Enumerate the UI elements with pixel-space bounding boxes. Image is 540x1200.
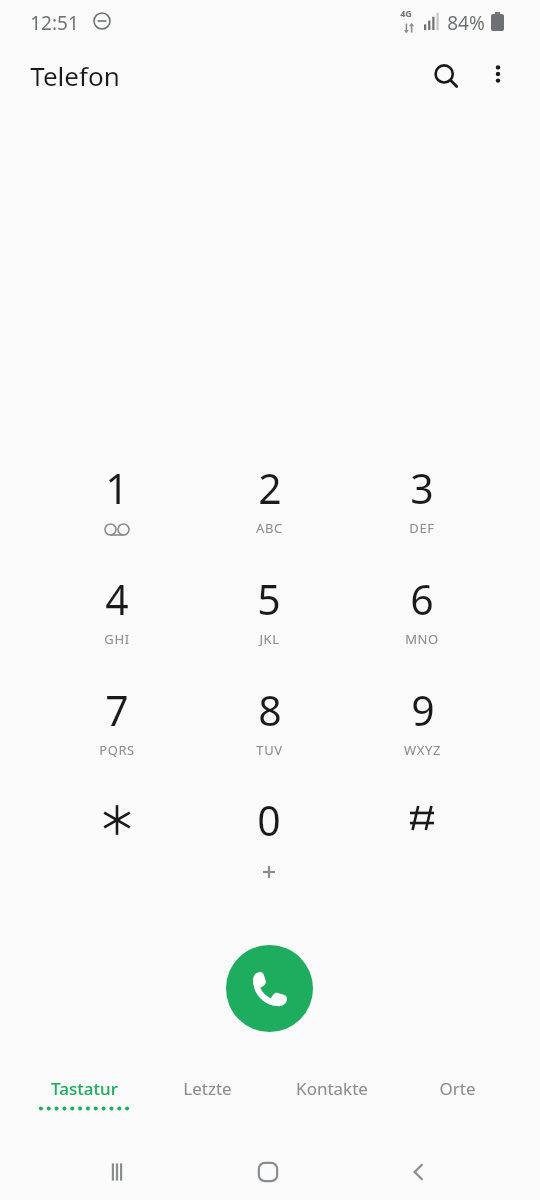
button[interactable]: Letzte: [152, 1068, 262, 1124]
staticText: WXYZ: [404, 741, 441, 759]
staticText: Tastatur: [51, 1077, 118, 1100]
button[interactable]: 8: [193, 672, 345, 783]
staticText: 9: [411, 682, 435, 738]
staticText: Orte: [439, 1077, 476, 1100]
staticText: 12:51: [30, 10, 79, 36]
button[interactable]: Kontakte: [272, 1068, 392, 1124]
staticText: 5: [257, 571, 281, 627]
button[interactable]: Weitere Optionen: [476, 52, 520, 96]
staticText: 7: [105, 682, 129, 738]
button[interactable]: 1: [41, 450, 193, 561]
button[interactable]: 3: [346, 450, 498, 561]
staticText: 8: [258, 682, 282, 738]
button[interactable]: 7: [41, 672, 193, 783]
staticText: 84%: [447, 10, 485, 36]
button[interactable]: [346, 782, 498, 893]
button[interactable]: Zurück: [389, 1142, 449, 1200]
staticText: Telefon: [30, 58, 120, 93]
button[interactable]: 4: [41, 561, 193, 672]
staticText: 4: [105, 571, 129, 627]
staticText: JKL: [259, 630, 280, 648]
staticText: 2: [258, 460, 282, 516]
button[interactable]: Tastatur: [24, 1068, 144, 1124]
staticText: GHI: [104, 630, 130, 648]
staticText: 4G: [400, 7, 412, 19]
staticText: 0: [257, 792, 281, 848]
button[interactable]: 5: [193, 561, 345, 672]
staticText: ABC: [256, 519, 283, 537]
staticText: TUV: [256, 741, 283, 759]
button[interactable]: Orte: [407, 1068, 507, 1124]
staticText: Kontakte: [296, 1077, 368, 1100]
staticText: DEF: [409, 519, 435, 537]
button[interactable]: 2: [193, 450, 345, 561]
button[interactable]: [41, 782, 193, 893]
button[interactable]: Suchen: [422, 52, 470, 100]
staticText: PQRS: [99, 741, 135, 759]
button[interactable]: 6: [346, 561, 498, 672]
button[interactable]: Letzte Apps: [87, 1142, 147, 1200]
button[interactable]: 0: [193, 782, 345, 893]
staticText: 1: [105, 460, 129, 516]
staticText: Letzte: [183, 1077, 232, 1100]
button[interactable]: Anrufen: [226, 945, 313, 1032]
button[interactable]: 9: [346, 672, 498, 783]
button[interactable]: Startbildschirm: [238, 1142, 298, 1200]
staticText: 6: [410, 571, 434, 627]
staticText: MNO: [405, 630, 439, 648]
staticText: 3: [410, 460, 434, 516]
